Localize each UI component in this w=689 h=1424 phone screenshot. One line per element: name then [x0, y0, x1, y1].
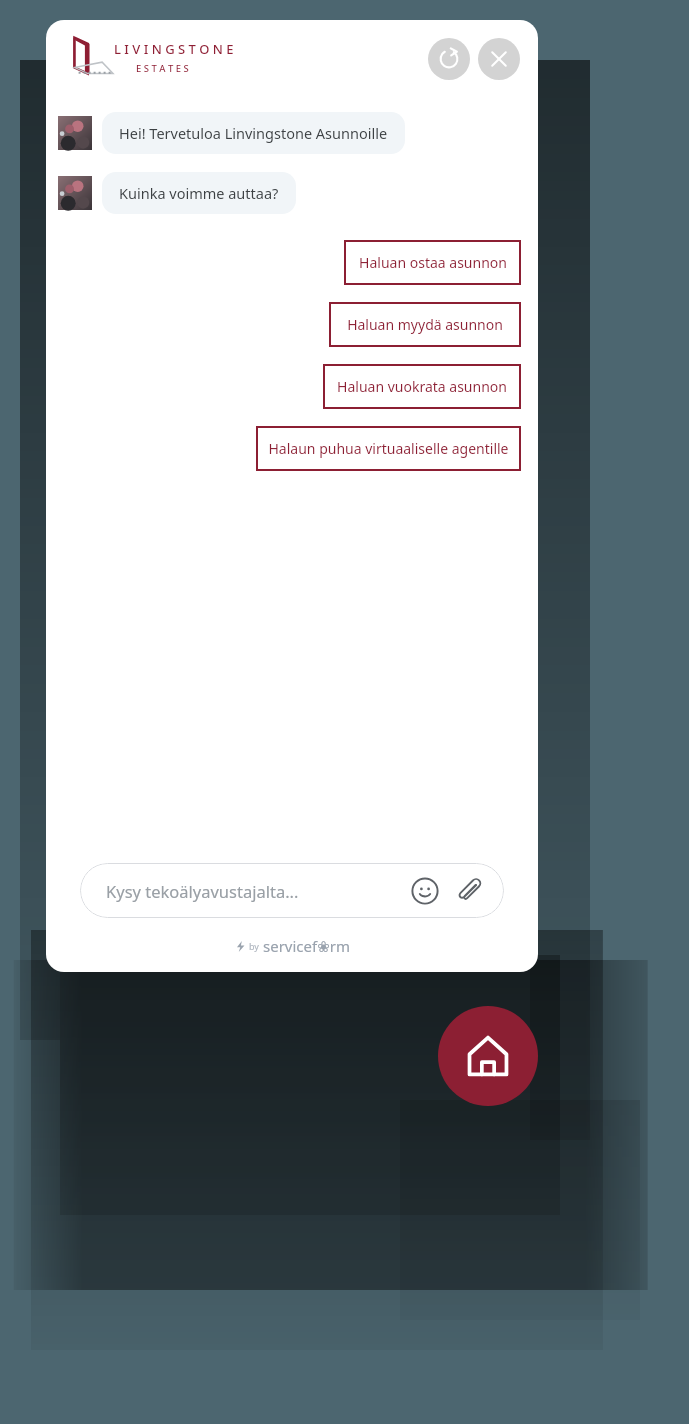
staticText: E S T A T E S — [136, 62, 189, 75]
button[interactable]: Refresh — [428, 38, 470, 80]
staticText: Kuinka voimme auttaa? — [119, 183, 279, 203]
button[interactable]: Close — [478, 38, 520, 80]
button[interactable]: Haluan vuokrata asunnon — [323, 364, 521, 409]
staticText: Hei! Tervetuloa Linvingstone Asunnoille — [119, 123, 388, 143]
button[interactable]: Attach file — [454, 876, 484, 906]
staticText: Haluan ostaa asunnon — [359, 253, 507, 272]
button[interactable]: Haluan myydä asunnon — [329, 302, 521, 347]
staticText: Haluan vuokrata asunnon — [337, 377, 507, 396]
button[interactable]: Haluan ostaa asunnon — [344, 240, 521, 285]
staticText: Halaun puhua virtuaaliselle agentille — [268, 439, 509, 458]
staticText: by — [249, 940, 259, 952]
button[interactable]: Emoji — [410, 876, 440, 906]
staticText: L I V I N G S T O N E — [114, 40, 234, 58]
button[interactable]: Hei! Tervetuloa Linvingstone Asunnoille — [102, 112, 405, 154]
staticText: Kysy tekoälyavustajalta... — [106, 880, 299, 902]
button[interactable]: Home — [438, 1006, 538, 1106]
button[interactable]: Halaun puhua virtuaaliselle agentille — [256, 426, 521, 471]
staticText: Haluan myydä asunnon — [347, 315, 503, 334]
button[interactable]: Kysy tekoälyavustajalta... — [80, 863, 504, 918]
staticText: servicef❀rm — [263, 936, 350, 956]
button[interactable]: Kuinka voimme auttaa? — [102, 172, 296, 214]
